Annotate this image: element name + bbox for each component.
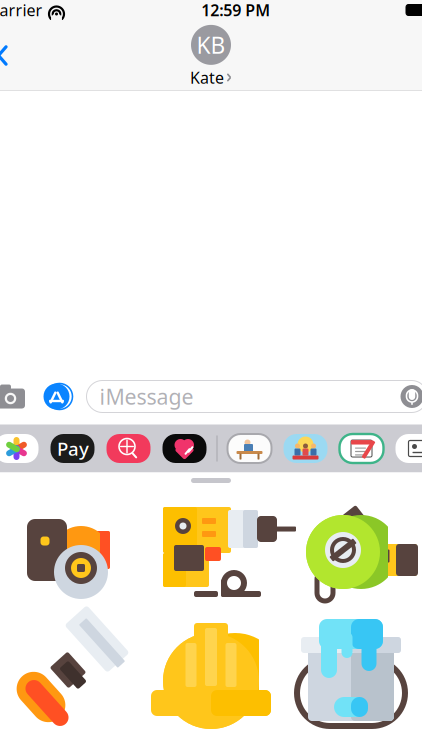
button[interactable]: Workers stickers xyxy=(277,434,333,463)
button[interactable]: Digital Touch xyxy=(156,434,212,463)
button[interactable]: Notepad stickers xyxy=(333,434,389,463)
staticText: Pay xyxy=(57,436,89,461)
button[interactable]: iMessage text field xyxy=(86,380,422,412)
button[interactable]: Kate, contact details xyxy=(190,23,232,88)
button[interactable]: Photos app xyxy=(0,434,44,463)
button[interactable]: Drill sticker xyxy=(141,494,281,609)
button[interactable]: Apple Pay xyxy=(44,434,100,463)
staticText: 12:59 PM xyxy=(201,0,270,21)
button[interactable]: Paint bucket sticker xyxy=(281,609,421,724)
button[interactable]: Camera xyxy=(0,377,34,415)
button[interactable]: Back xyxy=(0,32,10,78)
button[interactable]: iMessage apps xyxy=(34,376,78,416)
staticText: Kate xyxy=(190,67,224,88)
button[interactable]: Carpenter stickers xyxy=(221,434,277,463)
button[interactable]: Music search xyxy=(100,434,156,463)
staticText: Carrier xyxy=(0,0,42,21)
staticText: iMessage xyxy=(99,382,193,411)
staticText: KB xyxy=(196,30,225,60)
button[interactable]: Screwdriver sticker xyxy=(1,609,141,724)
button[interactable]: More stickers xyxy=(389,434,422,463)
button[interactable]: Hard hat sticker xyxy=(141,609,281,724)
button[interactable]: Tape measure sticker xyxy=(281,494,421,609)
button[interactable]: Circular saw sticker xyxy=(1,494,141,609)
